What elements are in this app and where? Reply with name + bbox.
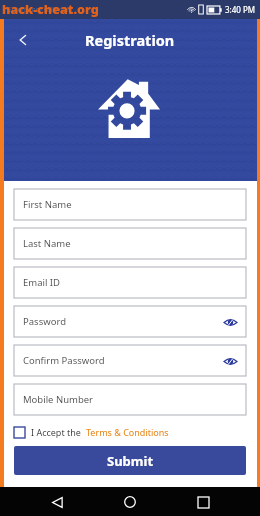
staticText: I Accept the xyxy=(31,426,81,438)
button[interactable]: Submit xyxy=(14,446,246,475)
button[interactable]: Back xyxy=(8,25,38,55)
staticText: hack-cheat.org xyxy=(2,1,99,18)
button[interactable]: I Accept the xyxy=(14,422,246,442)
staticText: Mobile Number xyxy=(23,393,94,406)
staticText: Confirm Password xyxy=(23,354,105,367)
button[interactable]: Recent apps xyxy=(190,489,216,515)
button[interactable]: Back xyxy=(44,489,70,515)
button[interactable]: Confirm Password xyxy=(14,345,246,376)
button[interactable]: Email ID xyxy=(14,267,246,298)
staticText: 3:40 PM xyxy=(225,4,256,15)
staticText: Last Name xyxy=(23,237,71,250)
staticText: First Name xyxy=(23,198,72,211)
button[interactable]: Terms & Conditions xyxy=(86,426,169,438)
button[interactable]: Last Name xyxy=(14,228,246,259)
staticText: Submit xyxy=(107,452,154,470)
button[interactable]: Mobile Number xyxy=(14,384,246,415)
staticText: Email ID xyxy=(23,276,61,289)
button[interactable]: Show password xyxy=(221,352,239,370)
staticText: Emergency calls only xyxy=(8,5,72,14)
staticText: Terms & Conditions xyxy=(86,426,169,438)
staticText: Password xyxy=(23,315,66,328)
staticText: Registration xyxy=(85,30,175,50)
button[interactable]: Password xyxy=(14,306,246,337)
button[interactable]: Home xyxy=(117,489,143,515)
button[interactable]: First Name xyxy=(14,189,246,220)
button[interactable]: Show password xyxy=(221,313,239,331)
